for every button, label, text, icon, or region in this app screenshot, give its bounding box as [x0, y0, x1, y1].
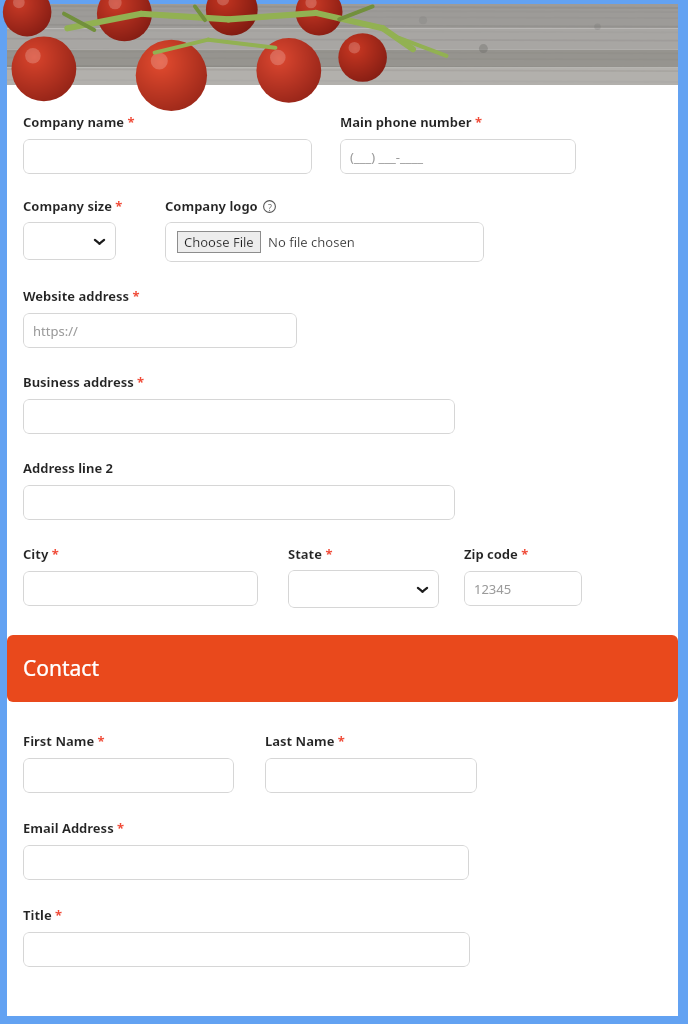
button[interactable]	[23, 485, 455, 520]
button[interactable]	[23, 758, 234, 793]
button[interactable]: Help	[263, 200, 276, 213]
staticText: (___) ___-____	[350, 148, 424, 166]
button[interactable]: (___) ___-____	[340, 139, 576, 174]
staticText: Company name *	[23, 113, 135, 131]
staticText: First Name *	[23, 732, 105, 750]
button[interactable]	[23, 399, 455, 434]
staticText: Contact	[23, 654, 99, 683]
button[interactable]	[23, 932, 470, 967]
staticText: Address line 2	[23, 459, 113, 477]
staticText: Main phone number *	[340, 113, 482, 131]
staticText: Title *	[23, 906, 63, 924]
staticText: Zip code *	[464, 545, 529, 563]
staticText: No file chosen	[268, 233, 355, 251]
staticText: 12345	[474, 580, 512, 598]
staticText: Company size *	[23, 197, 123, 215]
button[interactable]: 12345	[464, 571, 582, 606]
button[interactable]	[265, 758, 477, 793]
staticText: https://	[33, 322, 78, 340]
button[interactable]: https://	[23, 313, 297, 348]
staticText: ?	[268, 201, 272, 213]
button[interactable]	[23, 571, 258, 606]
staticText: Business address *	[23, 373, 145, 391]
button[interactable]	[23, 139, 312, 174]
staticText: Website address *	[23, 287, 140, 305]
staticText: Email Address *	[23, 819, 125, 837]
staticText: City *	[23, 545, 59, 563]
button[interactable]	[23, 845, 469, 880]
button[interactable]: Select option	[23, 222, 116, 260]
button[interactable]: Select option	[288, 570, 439, 608]
staticText: Company logo	[165, 197, 258, 215]
button[interactable]: Choose File	[165, 222, 484, 262]
staticText: Choose File	[184, 233, 254, 251]
staticText: State *	[288, 545, 333, 563]
staticText: Last Name *	[265, 732, 345, 750]
